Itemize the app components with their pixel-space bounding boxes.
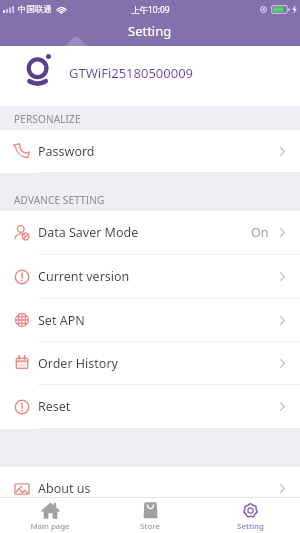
staticText: Setting <box>128 22 172 40</box>
button[interactable]: Current version <box>0 255 300 299</box>
staticText: Store <box>140 521 160 532</box>
staticText: GTWiFi25180500009 <box>69 64 194 82</box>
staticText: Order History <box>38 355 118 372</box>
staticText: About us <box>38 480 91 497</box>
button[interactable]: Set APN <box>0 299 300 342</box>
staticText: On <box>251 224 269 241</box>
staticText: Password <box>38 143 95 160</box>
staticText: ADVANCE SETTING <box>14 193 105 207</box>
button[interactable]: Reset <box>0 385 300 429</box>
button[interactable]: Main page <box>0 498 100 533</box>
staticText: Current version <box>38 268 130 285</box>
staticText: PERSONALIZE <box>14 112 81 126</box>
button[interactable]: Setting <box>200 498 300 533</box>
button[interactable]: Order History <box>0 342 300 385</box>
staticText: Data Saver Mode <box>38 224 139 241</box>
staticText: Main page <box>30 521 70 532</box>
staticText: Set APN <box>38 312 85 329</box>
button[interactable]: Data Saver Mode <box>0 211 300 255</box>
button[interactable]: About us <box>0 467 300 511</box>
button[interactable]: Store <box>100 498 200 533</box>
staticText: 上午10:09 <box>131 4 170 16</box>
staticText: Reset <box>38 398 71 415</box>
staticText: Setting <box>237 521 264 532</box>
button[interactable]: Password <box>0 130 300 173</box>
staticText: 中国联通 <box>18 4 52 15</box>
